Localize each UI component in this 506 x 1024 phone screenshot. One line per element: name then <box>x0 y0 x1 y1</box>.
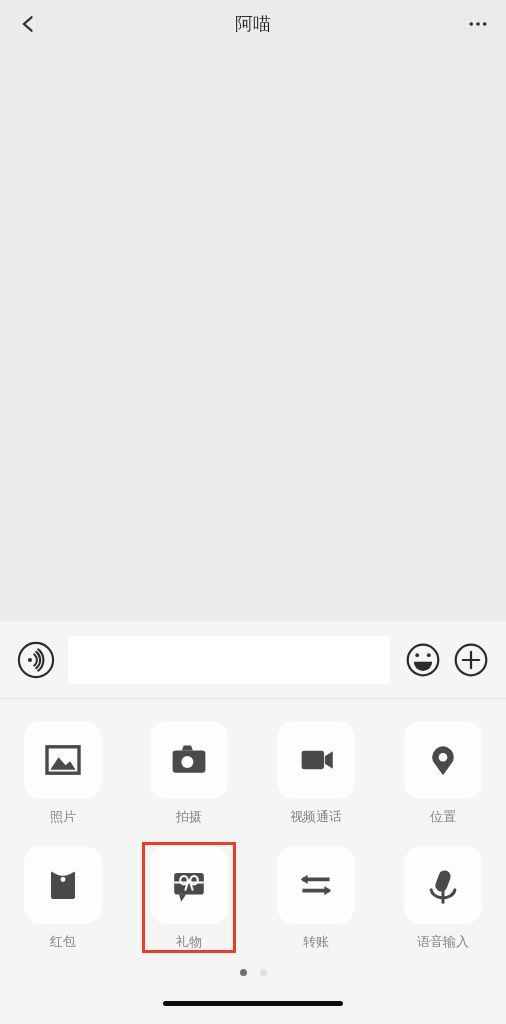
button[interactable]: 照片 <box>16 717 110 828</box>
button[interactable]: More functions <box>450 639 492 681</box>
button[interactable]: Emoji <box>402 639 444 681</box>
staticText: 照片 <box>50 808 76 824</box>
staticText: 转账 <box>303 933 329 949</box>
button[interactable]: 视频通话 <box>269 717 363 828</box>
staticText: 红包 <box>50 933 76 949</box>
button[interactable]: 拍摄 <box>142 717 236 828</box>
button[interactable]: Back <box>8 4 48 44</box>
staticText: 语音输入 <box>417 933 469 949</box>
staticText: 礼物 <box>176 933 202 949</box>
button[interactable]: 转账 <box>269 842 363 953</box>
button[interactable]: Voice input <box>14 638 58 682</box>
staticText: 拍摄 <box>176 808 202 824</box>
button[interactable]: 红包 <box>16 842 110 953</box>
button[interactable]: 语音输入 <box>396 842 490 953</box>
staticText: 阿喵 <box>235 13 271 36</box>
button[interactable]: More options <box>458 4 498 44</box>
button[interactable]: 礼物 <box>142 842 236 953</box>
button[interactable]: 位置 <box>396 717 490 828</box>
staticText: 视频通话 <box>290 808 342 824</box>
staticText: 位置 <box>430 808 456 824</box>
